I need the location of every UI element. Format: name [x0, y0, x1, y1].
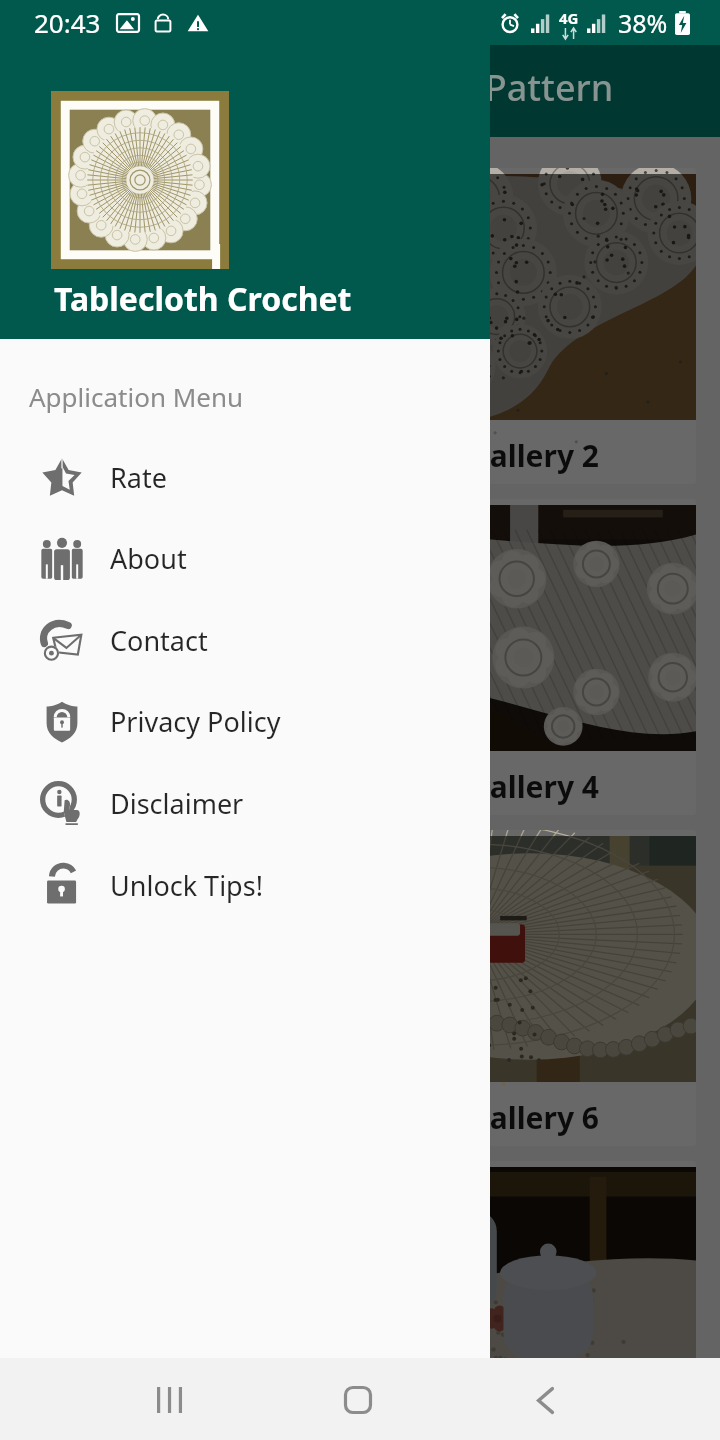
button[interactable]: Gallery 6 [364, 830, 696, 1146]
button[interactable]: Privacy Policy [0, 680, 490, 762]
staticText: Application Menu [29, 379, 244, 414]
button[interactable]: Gallery 2 [364, 168, 696, 484]
staticText: About [110, 540, 187, 577]
button[interactable]: Gallery 3 [24, 499, 356, 815]
button[interactable]: Gallery 5 [24, 830, 356, 1146]
staticText: 4G [559, 8, 579, 28]
staticText: Gallery 6 [468, 1097, 599, 1138]
button[interactable]: Gallery 7 [24, 1161, 356, 1440]
staticText: Disclaimer [110, 785, 244, 822]
staticText: Gallery 2 [468, 435, 599, 476]
staticText: 20:43 [34, 5, 101, 40]
staticText: Gallery 4 [468, 766, 599, 807]
button[interactable]: Home [318, 1360, 398, 1440]
staticText: Tablecloth Pattern [299, 63, 614, 112]
button[interactable]: About [0, 517, 490, 599]
staticText: Unlock Tips! [110, 867, 263, 904]
button[interactable]: Unlock Tips! [0, 844, 490, 926]
staticText: Privacy Policy [110, 703, 281, 740]
button[interactable]: Back [505, 1360, 585, 1440]
staticText: Gallery 3 [128, 766, 259, 807]
staticText: Contact [110, 622, 208, 659]
staticText: Tablecloth Crochet [54, 277, 352, 321]
button[interactable]: Disclaimer [0, 762, 490, 844]
button[interactable]: Recents [130, 1360, 210, 1440]
button[interactable]: Contact [0, 599, 490, 681]
staticText: Rate [110, 459, 167, 496]
button[interactable]: Gallery 8 [364, 1161, 696, 1440]
staticText: Gallery 1 [128, 435, 259, 476]
button[interactable]: Rate [0, 436, 490, 518]
staticText: 38% [618, 6, 668, 40]
button[interactable]: Gallery 1 [24, 168, 356, 484]
button[interactable]: Gallery 4 [364, 499, 696, 815]
